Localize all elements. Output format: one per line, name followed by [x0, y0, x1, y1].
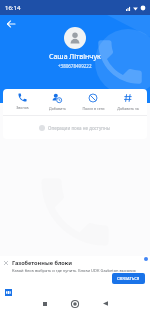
button[interactable]: Добавить	[40, 92, 74, 112]
button[interactable]: Recents	[34, 294, 56, 313]
button[interactable]: Добавить за	[111, 92, 145, 112]
button[interactable]: Звонок	[5, 92, 39, 111]
staticText: Поиск в сети	[82, 106, 105, 111]
staticText: Добавить	[49, 106, 66, 111]
staticText: Саша Літвінчук	[49, 52, 101, 62]
button[interactable]: Home	[64, 294, 86, 313]
staticText: +380678499222	[58, 63, 92, 69]
button[interactable]: Back	[3, 16, 19, 32]
staticText: Звонок	[16, 105, 29, 110]
staticText: Какой блок выбрать и где купить. Блоки U…	[12, 268, 136, 273]
button[interactable]: Close ad	[0, 256, 150, 288]
staticText: СВЯЗАТЬСЯ	[117, 276, 140, 281]
staticText: Добавить за	[117, 106, 139, 111]
button[interactable]: СВЯЗАТЬСЯ	[112, 273, 145, 284]
staticText: Газобетонные блоки	[12, 259, 73, 267]
staticText: Операции пока не доступны	[48, 125, 111, 131]
button[interactable]: Back	[94, 294, 116, 313]
staticText: 16:14	[5, 4, 21, 12]
button[interactable]: Поиск в сети	[76, 92, 110, 112]
button[interactable]: Операции пока не доступны	[3, 116, 147, 139]
button[interactable]: Close ad	[2, 259, 9, 266]
